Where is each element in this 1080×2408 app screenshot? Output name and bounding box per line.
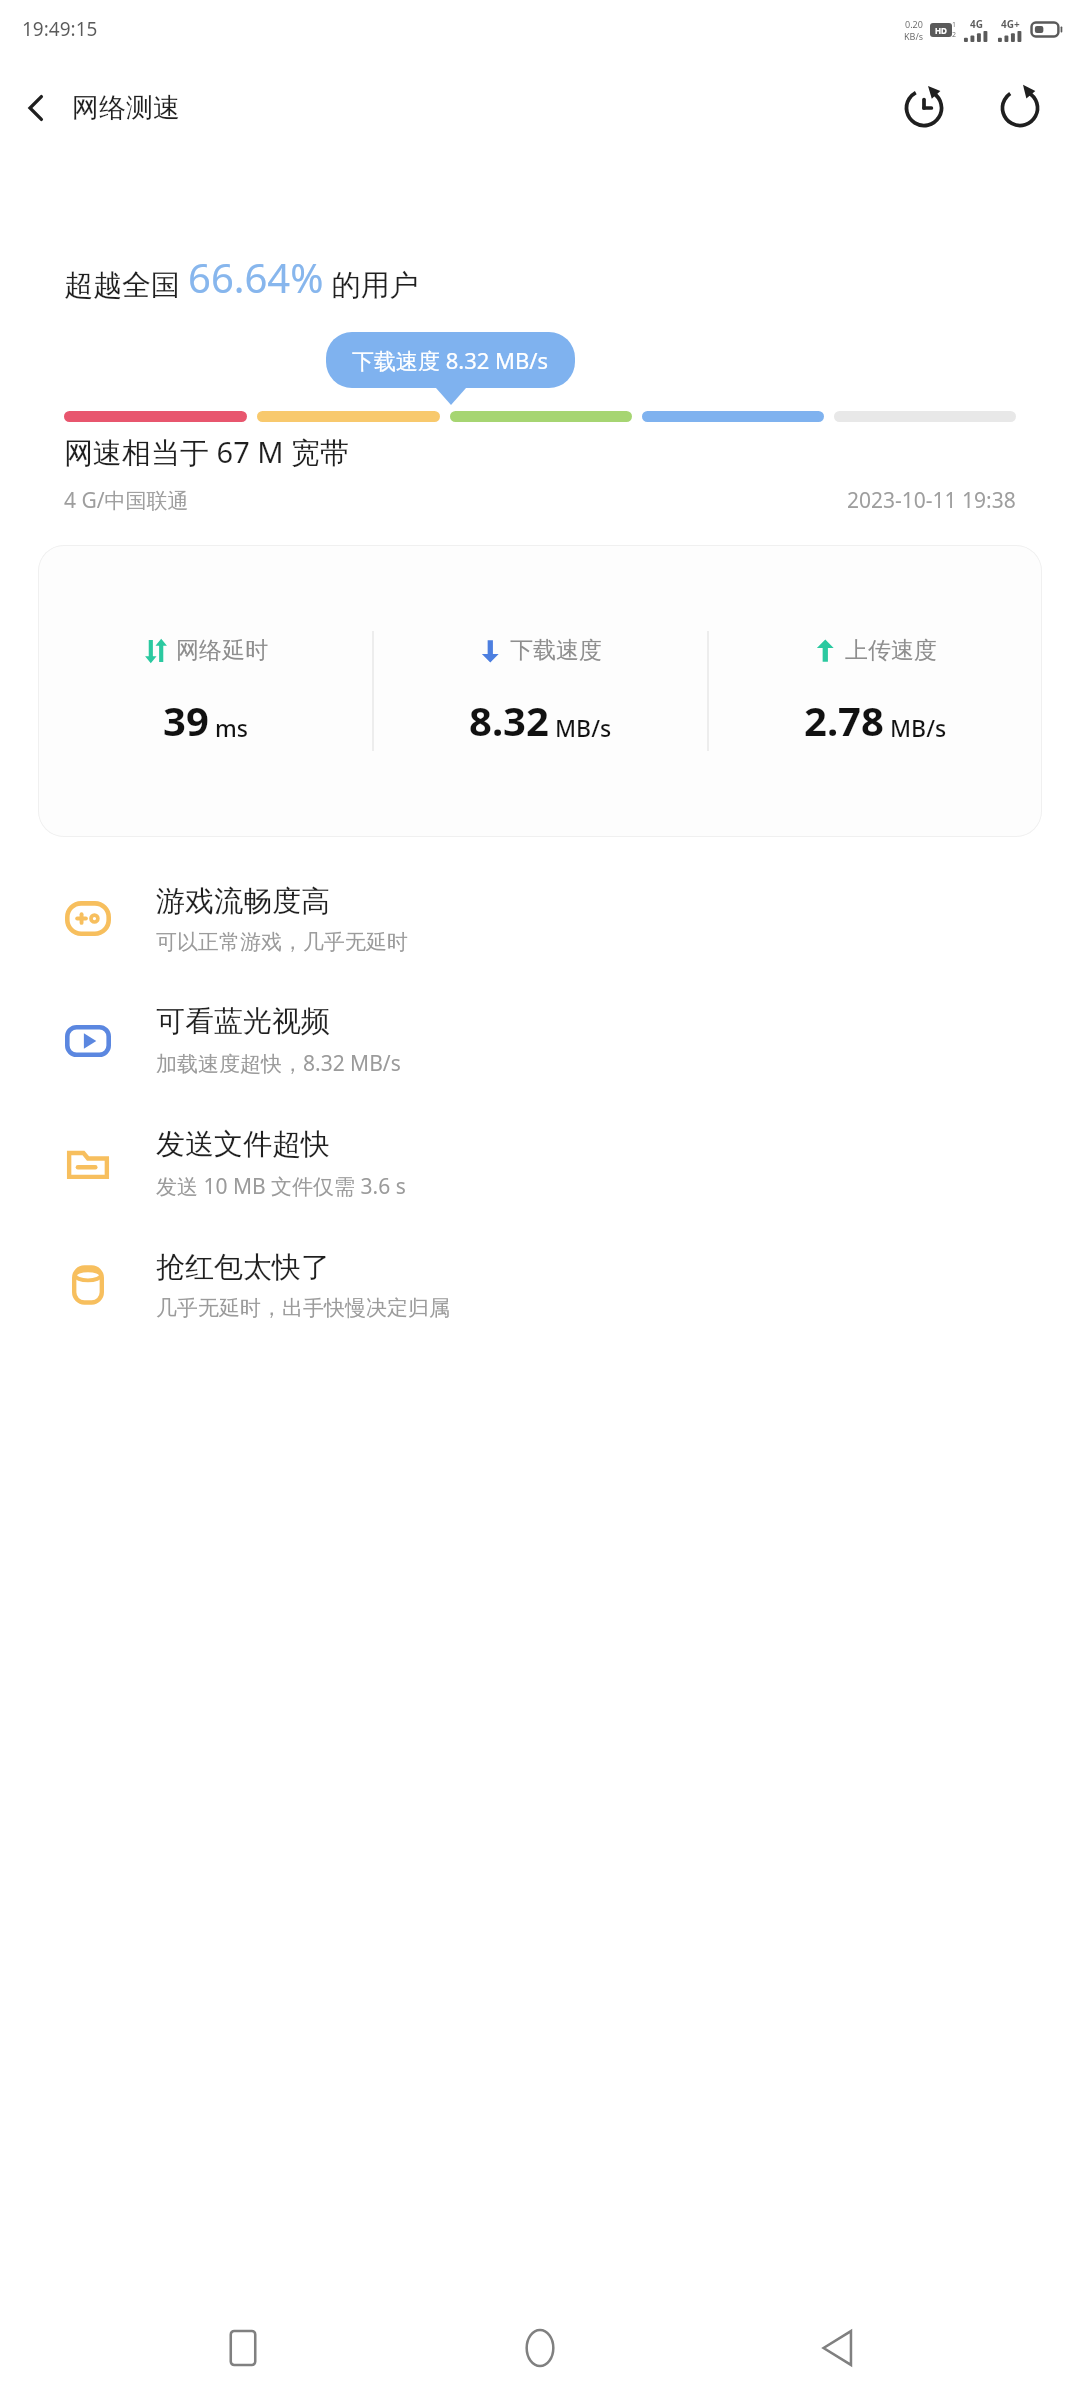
- button[interactable]: 网络延时: [38, 545, 1042, 837]
- staticText: 2023-10-11 19:38: [847, 486, 1016, 515]
- button[interactable]: History: [888, 72, 960, 144]
- staticText: 66.64%: [188, 250, 324, 304]
- staticText: 下载速度 8.32 MB/s: [352, 345, 549, 375]
- staticText: 超越全国: [64, 264, 188, 304]
- staticText: 网络测速: [72, 91, 180, 125]
- staticText: 19:49:15: [22, 16, 98, 42]
- button[interactable]: Retest: [984, 72, 1056, 144]
- staticText: 发送 10 MB 文件仅需 3.6 s: [156, 1172, 406, 1201]
- staticText: 4G: [970, 17, 983, 31]
- staticText: 2.78: [804, 693, 884, 747]
- button[interactable]: 可看蓝光视频: [0, 979, 1080, 1102]
- staticText: 抢红包太快了: [156, 1249, 330, 1286]
- staticText: 8.32: [469, 693, 549, 747]
- staticText: ms: [215, 712, 248, 743]
- staticText: 游戏流畅度高: [156, 883, 330, 920]
- staticText: MB/s: [890, 712, 947, 743]
- staticText: 0.20: [905, 18, 923, 30]
- staticText: 网络延时: [176, 636, 268, 665]
- button[interactable]: Back: [0, 72, 72, 144]
- button[interactable]: 游戏流畅度高: [0, 859, 1080, 979]
- button[interactable]: 抢红包太快了: [0, 1225, 1080, 1345]
- staticText: 4G+: [1001, 17, 1020, 31]
- button[interactable]: 发送文件超快: [0, 1102, 1080, 1225]
- staticText: 可以正常游戏，几乎无延时: [156, 929, 408, 955]
- staticText: KB/s: [904, 30, 924, 42]
- staticText: MB/s: [555, 712, 612, 743]
- staticText: 1: [952, 20, 957, 30]
- staticText: 的用户: [324, 264, 419, 304]
- staticText: 几乎无延时，出手快慢决定归属: [156, 1295, 450, 1321]
- staticText: 39: [163, 693, 209, 747]
- staticText: 网速相当于 67 M 宽带: [64, 432, 350, 472]
- staticText: 上传速度: [845, 636, 937, 665]
- staticText: 加载速度超快，8.32 MB/s: [156, 1049, 401, 1078]
- button[interactable]: Recents: [188, 2293, 298, 2403]
- button[interactable]: Back: [783, 2293, 893, 2403]
- staticText: 下载速度: [510, 636, 602, 665]
- button[interactable]: Home: [485, 2293, 595, 2403]
- staticText: 4 G/中国联通: [64, 486, 189, 515]
- staticText: HD: [935, 25, 947, 36]
- staticText: 2: [952, 30, 957, 40]
- staticText: 可看蓝光视频: [156, 1003, 330, 1040]
- staticText: 发送文件超快: [156, 1126, 330, 1163]
